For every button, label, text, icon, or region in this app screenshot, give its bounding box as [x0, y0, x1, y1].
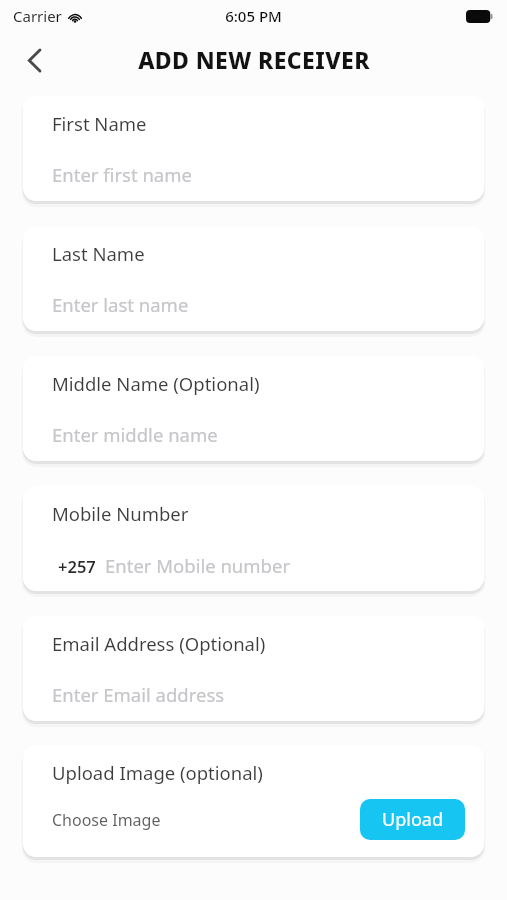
staticText: Middle Name (Optional): [52, 371, 260, 396]
staticText: First Name: [52, 111, 147, 136]
staticText: Mobile Number: [52, 501, 189, 526]
staticText: 6:05 PM: [225, 6, 282, 26]
button[interactable]: Last Name: [23, 226, 484, 331]
staticText: Enter middle name: [52, 422, 218, 447]
staticText: Enter first name: [52, 162, 192, 187]
button[interactable]: Back: [16, 42, 52, 78]
staticText: Upload Image (optional): [52, 760, 263, 785]
button[interactable]: Email Address (Optional): [23, 616, 484, 721]
staticText: +257: [58, 555, 96, 577]
staticText: Upload: [382, 807, 443, 832]
staticText: Choose Image: [52, 809, 161, 831]
staticText: Enter last name: [52, 292, 189, 317]
button[interactable]: Middle Name (Optional): [23, 356, 484, 461]
button[interactable]: First Name: [23, 96, 484, 201]
staticText: ADD NEW RECEIVER: [138, 44, 370, 75]
button[interactable]: Mobile Number: [23, 486, 484, 591]
staticText: Enter Mobile number: [105, 553, 291, 578]
staticText: Last Name: [52, 241, 145, 266]
button[interactable]: Upload Image (optional): [23, 745, 484, 857]
staticText: Enter Email address: [52, 682, 225, 707]
staticText: Carrier: [13, 6, 62, 26]
staticText: Email Address (Optional): [52, 631, 266, 656]
button[interactable]: Upload: [360, 799, 465, 840]
